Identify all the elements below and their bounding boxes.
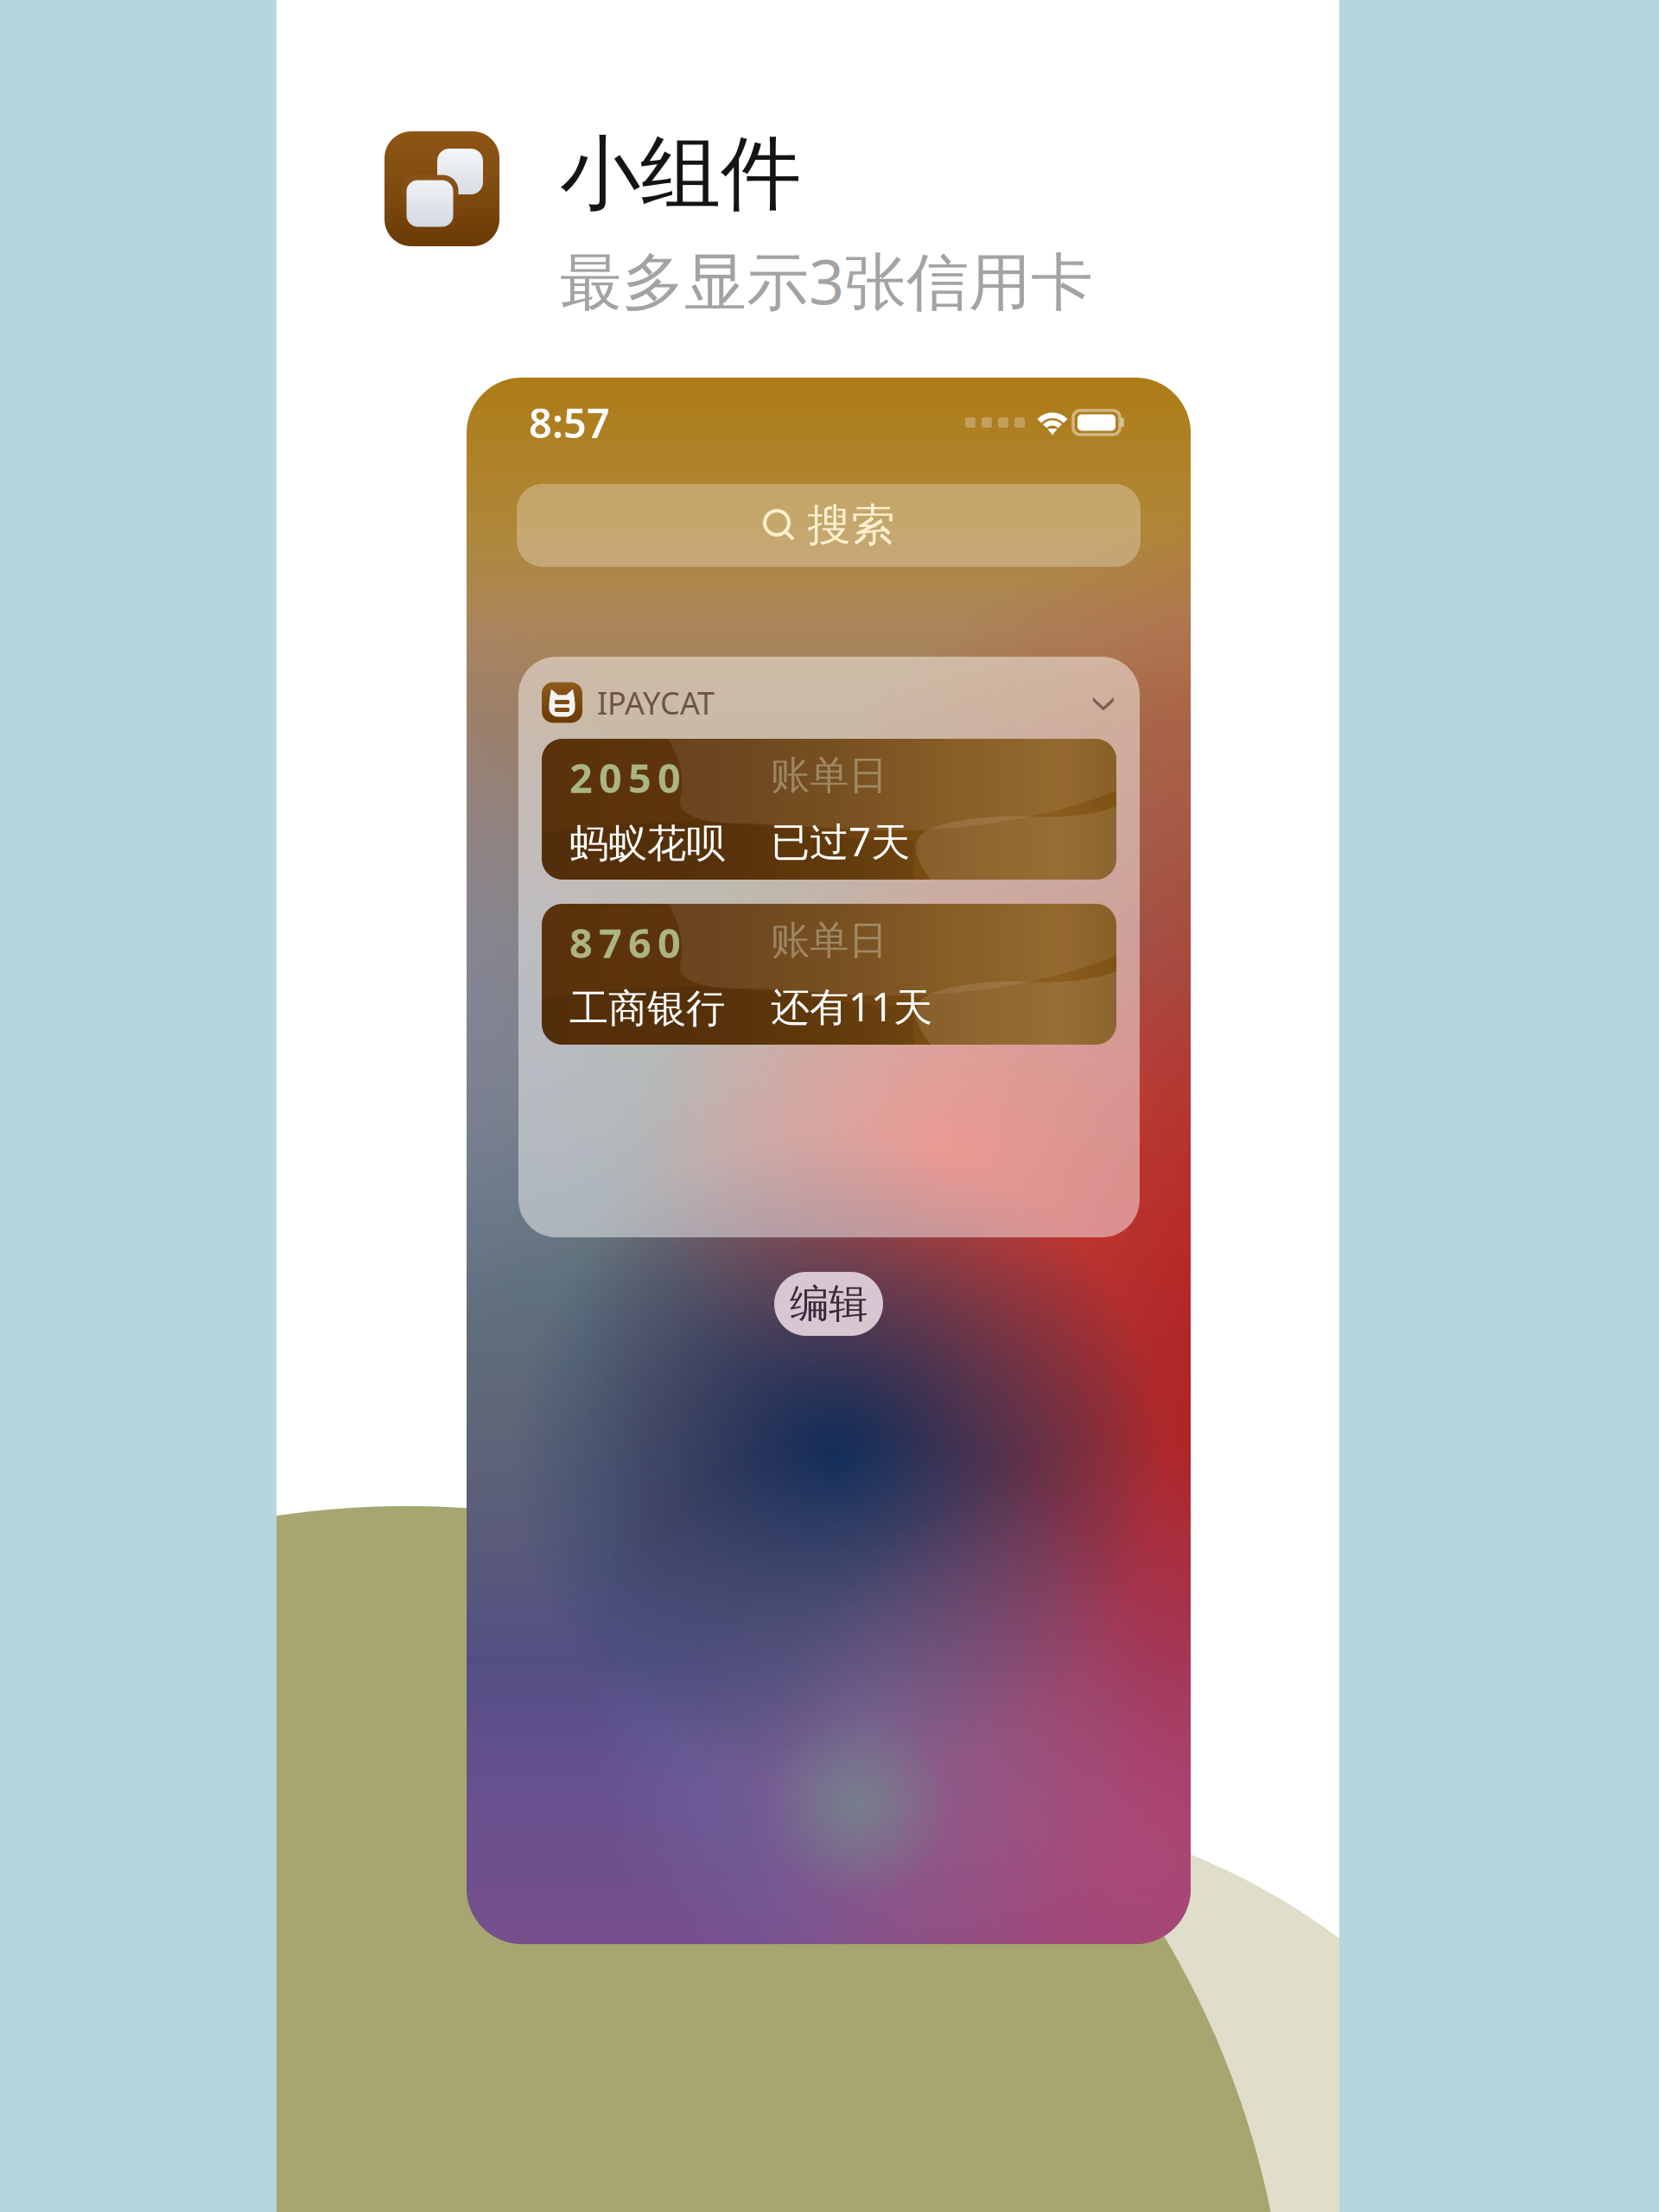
staticText: 蚂蚁花呗 xyxy=(569,820,725,868)
staticText: 8:57 xyxy=(529,396,610,449)
button[interactable]: 搜索 xyxy=(517,484,1141,567)
button[interactable]: 编辑 xyxy=(774,1272,883,1336)
staticText: 8760 xyxy=(569,916,681,969)
staticText: 编辑 xyxy=(790,1280,868,1328)
staticText: 账单日 xyxy=(771,751,887,800)
staticText: IPAYCAT xyxy=(597,682,715,723)
staticText: 2050 xyxy=(569,751,681,804)
staticText: 还有11天 xyxy=(771,980,932,1032)
staticText: 工商银行 xyxy=(569,985,725,1033)
staticText: 账单日 xyxy=(771,916,887,965)
button[interactable]: Collapse widget xyxy=(1090,689,1116,716)
button[interactable]: 2050 xyxy=(542,739,1116,880)
staticText: 搜索 xyxy=(807,498,895,552)
button[interactable]: 8760 xyxy=(542,904,1116,1045)
staticText: 小组件 xyxy=(560,124,801,223)
staticText: 最多显示3张信用卡 xyxy=(560,239,1093,322)
staticText: 已过7天 xyxy=(771,815,910,867)
